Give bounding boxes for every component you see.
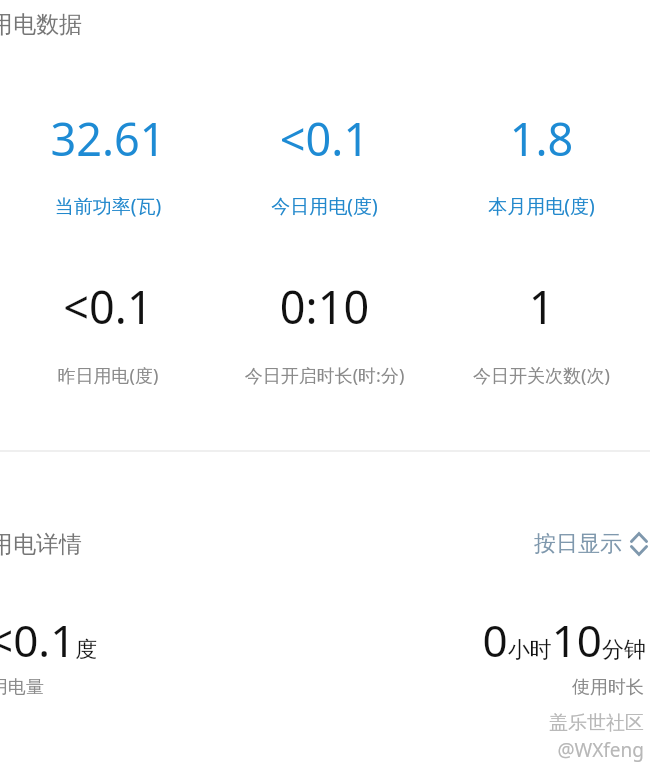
button[interactable]: 按日显示 <box>534 530 648 558</box>
button[interactable]: <0.1度 <box>0 610 98 699</box>
staticText: 0:10 <box>216 276 433 337</box>
staticText: 用电详情 <box>0 530 82 559</box>
staticText: 盖乐世社区 <box>549 711 644 735</box>
button[interactable]: <0.1 <box>216 108 433 219</box>
staticText: 昨日用电(度) <box>0 363 216 388</box>
button[interactable]: 1 <box>433 276 650 388</box>
staticText: 今日用电(度) <box>216 193 433 219</box>
button[interactable]: 0:10 <box>216 276 433 388</box>
staticText: <0.1度 <box>0 610 98 670</box>
staticText: 今日开关次数(次) <box>433 363 650 388</box>
other: 切换显示周期 <box>630 531 648 557</box>
staticText: 32.61 <box>0 108 216 169</box>
staticText: 0小时10分钟 <box>482 610 646 670</box>
button[interactable]: 1.8 <box>433 108 650 219</box>
staticText: 按日显示 <box>534 530 622 558</box>
button[interactable]: 0小时10分钟 <box>482 610 646 699</box>
staticText: 用电数据 <box>0 10 82 39</box>
staticText: 本月用电(度) <box>433 193 650 219</box>
button[interactable]: 32.61 <box>0 108 216 219</box>
staticText: 使用时长 <box>572 676 644 699</box>
staticText: 1 <box>433 276 650 337</box>
staticText: <0.1 <box>0 276 216 337</box>
staticText: 今日开启时长(时:分) <box>216 363 433 388</box>
staticText: 用电量 <box>0 676 44 699</box>
button[interactable]: <0.1 <box>0 276 216 388</box>
staticText: @WXfeng <box>557 737 644 763</box>
staticText: 当前功率(瓦) <box>0 193 216 219</box>
staticText: <0.1 <box>216 108 433 169</box>
staticText: 1.8 <box>433 108 650 169</box>
